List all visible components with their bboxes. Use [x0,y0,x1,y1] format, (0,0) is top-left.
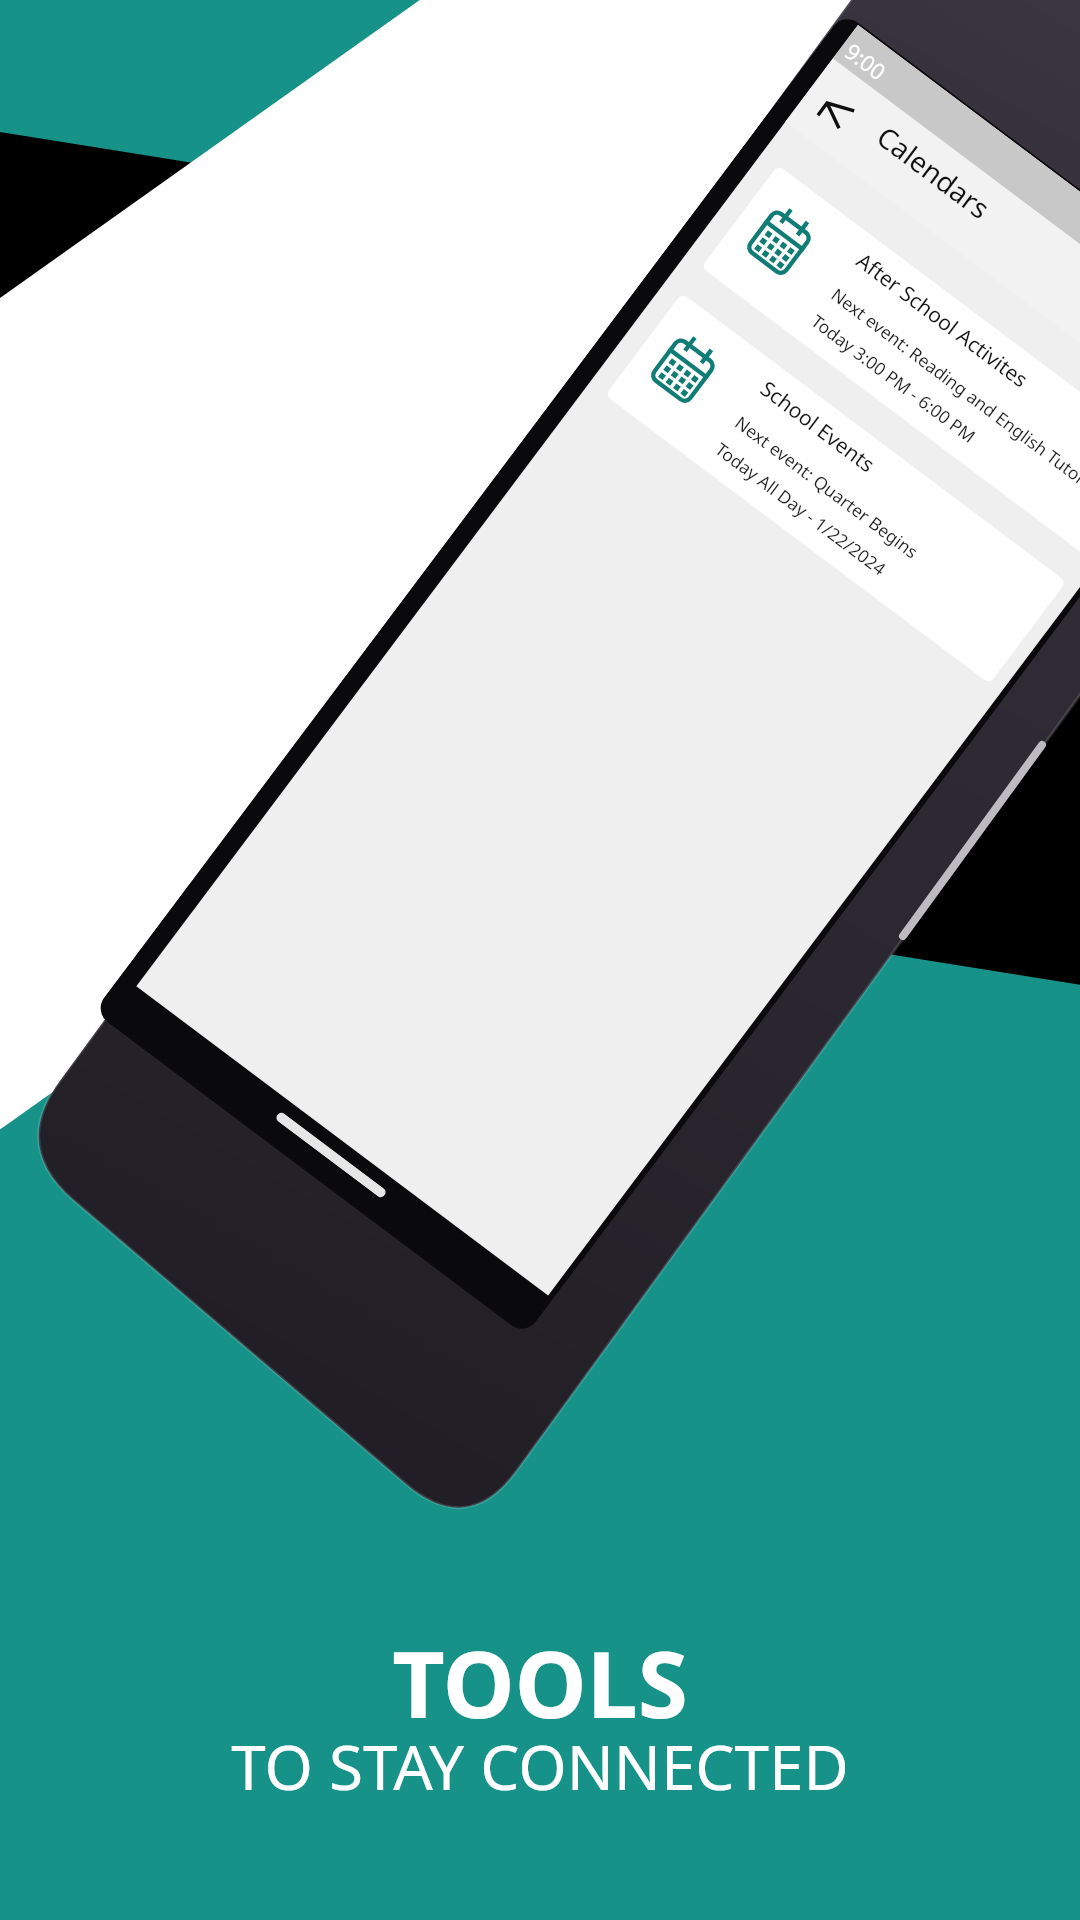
staticText: Today 3:00 PM - 6:00 PM [807,309,981,448]
staticText: TOOLS [0,1621,1080,1745]
button[interactable]: School Events [605,293,1066,684]
staticText: Calendars [870,117,998,227]
staticText: School Events [755,374,881,479]
staticText: 9:00 [839,36,893,86]
staticText: After School Activites [851,246,1034,394]
staticText: TO STAY CONNECTED [0,1724,1080,1808]
button[interactable]: Back [807,80,868,142]
staticText: Next event: Reading and English Tutoring [827,282,1080,506]
staticText: Next event: Quarter Begins [731,410,923,563]
staticText: Today All Day - 1/22/2024 [711,437,891,581]
button[interactable]: After School Activites [701,165,1080,556]
